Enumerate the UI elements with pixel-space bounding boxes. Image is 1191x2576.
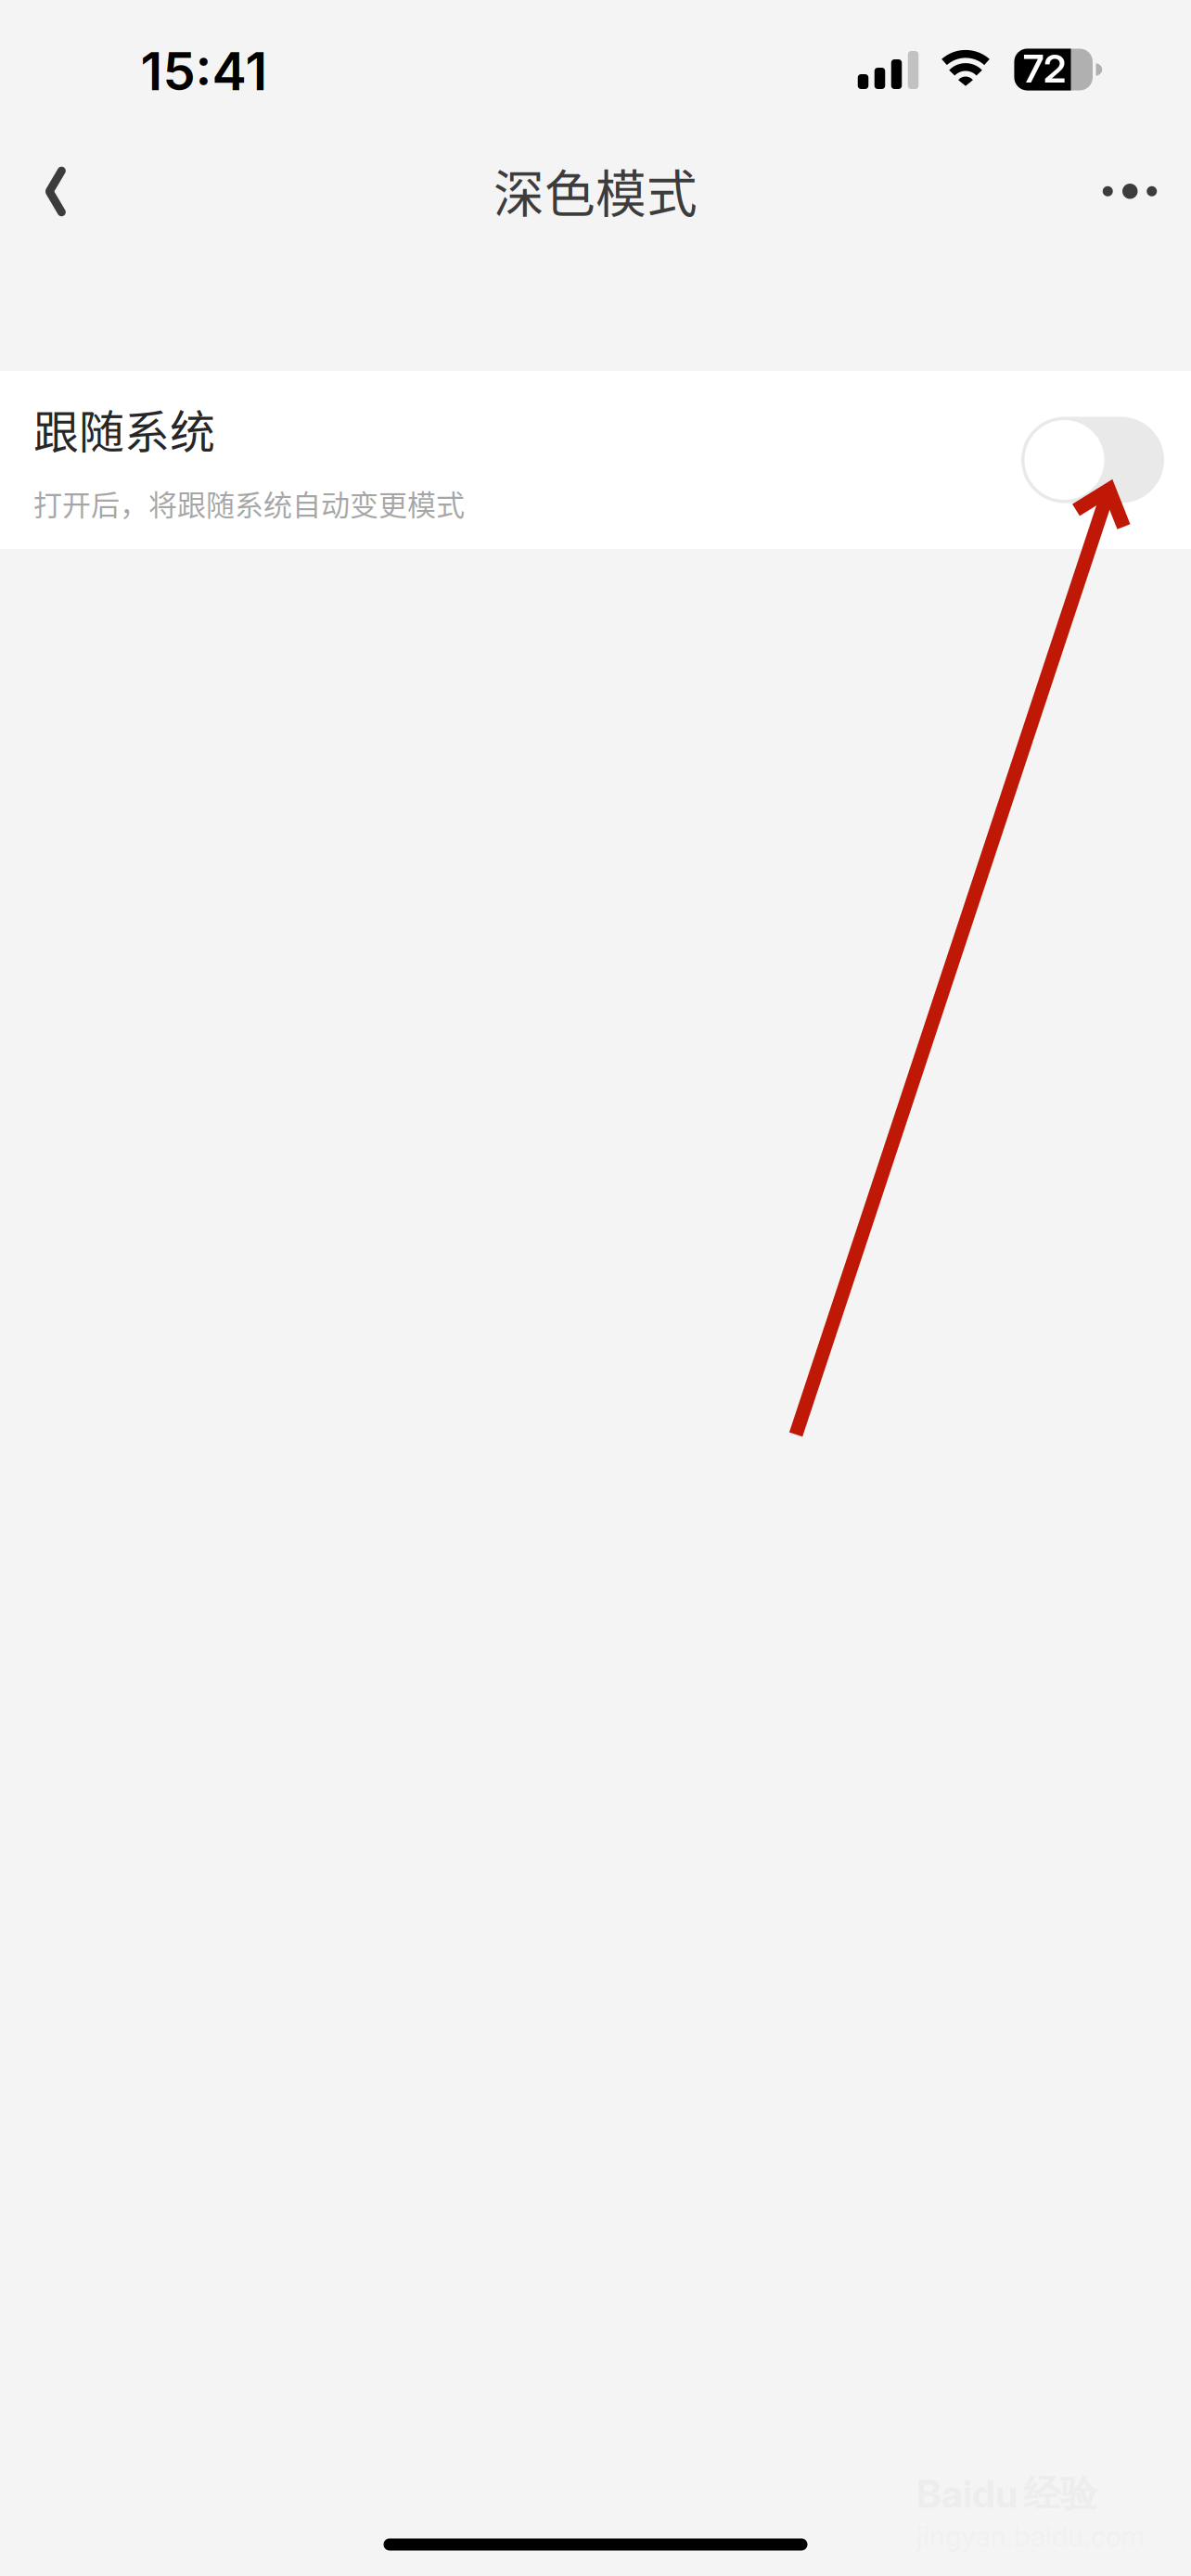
- staticText: 深色模式: [493, 153, 698, 227]
- staticText: 打开后，将跟随系统自动变更模式: [33, 482, 465, 524]
- staticText: Baidu: [916, 2471, 1018, 2517]
- button[interactable]: 返回: [1, 137, 110, 246]
- staticText: 经验: [1023, 2470, 1097, 2517]
- staticText: 72: [1023, 45, 1066, 92]
- button[interactable]: 跟随系统: [0, 371, 1191, 549]
- staticText: 跟随系统: [33, 396, 215, 462]
- button[interactable]: 更多: [1072, 140, 1187, 242]
- staticText: 15:41: [141, 40, 268, 103]
